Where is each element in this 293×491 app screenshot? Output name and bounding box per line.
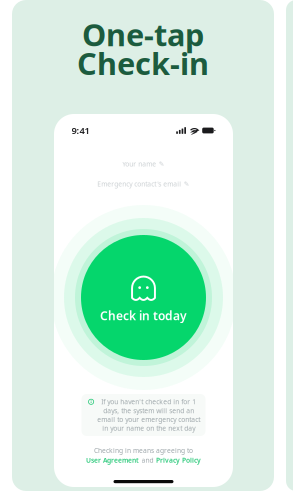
staticText: Your name: [122, 160, 156, 168]
staticText: Check in today: [100, 307, 187, 323]
staticText: Privacy Policy: [156, 456, 201, 465]
staticText: ✎: [184, 180, 190, 188]
staticText: Check-in: [77, 43, 209, 83]
staticText: Checking in means agreeing to: [94, 446, 193, 455]
button[interactable]: User Agreement: [86, 456, 139, 465]
staticText: One-tap: [82, 14, 204, 55]
staticText: User Agreement: [86, 456, 139, 465]
button[interactable]: Emergency contact's email: [73, 180, 213, 188]
staticText: and: [141, 456, 153, 465]
staticText: 9:41: [71, 124, 89, 137]
staticText: Emergency contact's email: [97, 180, 181, 188]
staticText: ✎: [159, 160, 165, 168]
staticText: If you haven't checked in for 1 days, th…: [97, 397, 200, 433]
button[interactable]: Your name: [73, 160, 213, 168]
button[interactable]: Privacy Policy: [156, 456, 201, 465]
button[interactable]: Check in today: [54, 208, 233, 387]
